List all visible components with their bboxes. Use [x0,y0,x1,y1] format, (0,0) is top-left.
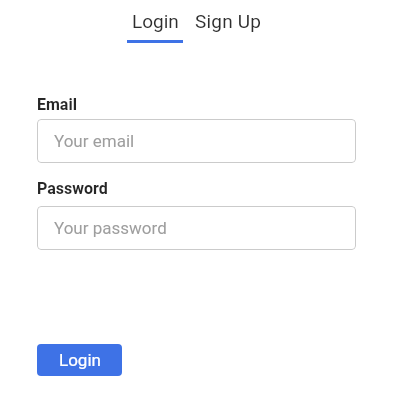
button[interactable]: Your email [37,119,356,163]
staticText: Your password [54,218,167,238]
button[interactable]: Sign Up [195,10,262,32]
staticText: Email [37,95,77,114]
staticText: Login [59,350,101,370]
button[interactable]: Your password [37,206,356,250]
staticText: Password [37,179,108,198]
button[interactable]: Login [127,10,183,43]
staticText: Your email [54,131,135,151]
staticText: Sign Up [195,10,262,32]
button[interactable]: Login [37,344,122,376]
staticText: Login [132,10,179,32]
